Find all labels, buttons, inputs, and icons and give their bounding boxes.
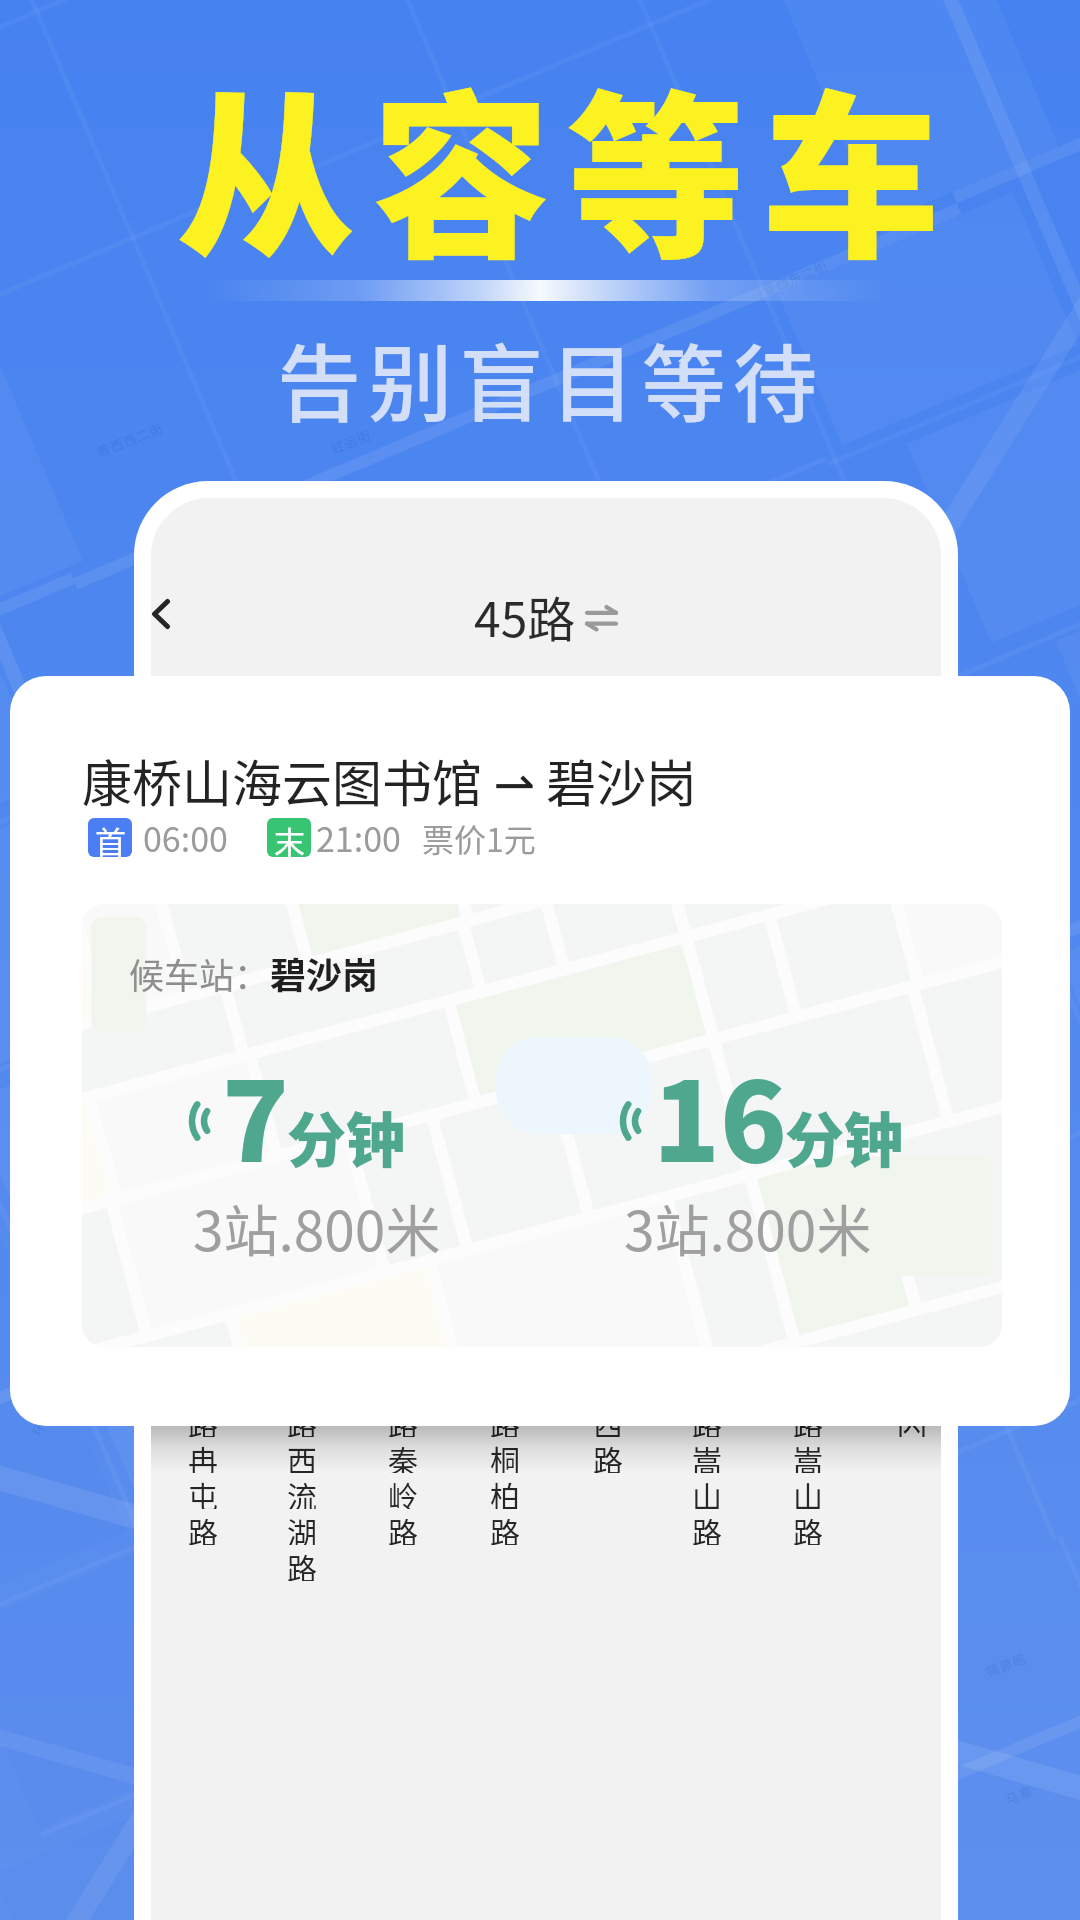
button[interactable]: 45路 (474, 581, 617, 651)
staticText: 西 (593, 1401, 623, 1437)
staticText: 冉 (188, 1437, 218, 1473)
staticText: 候车站： (129, 948, 270, 999)
staticText: 屯 (188, 1473, 218, 1509)
button[interactable]: Back (151, 576, 199, 652)
staticText: 普西西二街 (94, 418, 167, 461)
staticText: 嵩 (793, 1437, 823, 1473)
staticText: 分钟 (785, 1094, 904, 1179)
staticText: 西 (287, 1437, 317, 1473)
staticText: 票价1元 (422, 815, 536, 861)
staticText: 路 (793, 1401, 823, 1437)
staticText: 路 (593, 1437, 623, 1473)
staticText: 普西东二街 (759, 256, 832, 299)
staticText: 湖 (287, 1509, 317, 1545)
staticText: 路 (388, 1509, 418, 1545)
staticText: 首 (95, 818, 126, 857)
staticText: 红运街 (328, 425, 375, 458)
button[interactable]: 路 (287, 1401, 317, 1581)
staticText: 路 (287, 1401, 317, 1437)
staticText: 桐 (490, 1437, 520, 1473)
staticText: 秦 (388, 1437, 418, 1473)
staticText: 碧沙岗 (270, 947, 379, 999)
staticText: 路 (188, 1509, 218, 1545)
button[interactable]: 7 (183, 1024, 451, 1283)
staticText: 路 (388, 1401, 418, 1437)
staticText: 环路二段 (27, 1380, 70, 1439)
staticText: 嵩 (692, 1437, 722, 1473)
staticText: 7 (222, 1034, 289, 1193)
staticText: 末 (274, 818, 305, 857)
staticText: 山 (793, 1473, 823, 1509)
button[interactable]: 闪 (897, 1401, 927, 1437)
staticText: 路 (490, 1509, 520, 1545)
staticText: 路 (692, 1509, 722, 1545)
staticText: 16 (653, 1034, 787, 1193)
staticText: 锦源阁 (983, 1648, 1030, 1681)
staticText: 分钟 (287, 1094, 406, 1179)
staticText: 山 (692, 1473, 722, 1509)
button[interactable]: 康桥山海云图书馆 ⇀ 碧沙岗 (70, 732, 709, 828)
staticText: 06:00 (143, 813, 228, 862)
staticText: 45路 (474, 581, 576, 651)
staticText: 从容等车 (177, 37, 957, 295)
button[interactable]: 路 (188, 1401, 218, 1545)
staticText: 马寨 (1003, 1781, 1036, 1808)
staticText: 闪 (897, 1401, 927, 1437)
staticText: 3站.800米 (624, 1187, 872, 1267)
staticText: 路 (692, 1401, 722, 1437)
other: Switch direction (586, 605, 617, 631)
button[interactable]: 路 (388, 1401, 418, 1545)
staticText: 告别盲目等待 (277, 318, 825, 440)
staticText: 岭 (388, 1473, 418, 1509)
staticText: 路 (490, 1401, 520, 1437)
staticText: 柏 (490, 1473, 520, 1509)
staticText: 路 (188, 1401, 218, 1437)
button[interactable]: 路 (692, 1401, 722, 1545)
staticText: 21:00 (316, 813, 401, 862)
button[interactable]: 16 (614, 1024, 916, 1283)
button[interactable]: 候车站： (119, 937, 389, 1009)
button[interactable]: 西 (593, 1401, 623, 1473)
staticText: 流 (287, 1473, 317, 1509)
button[interactable]: 路 (490, 1401, 520, 1545)
staticText: 路 (793, 1509, 823, 1545)
staticText: 3站.800米 (193, 1187, 441, 1267)
staticText: 路 (287, 1545, 317, 1581)
button[interactable]: 路 (793, 1401, 823, 1545)
